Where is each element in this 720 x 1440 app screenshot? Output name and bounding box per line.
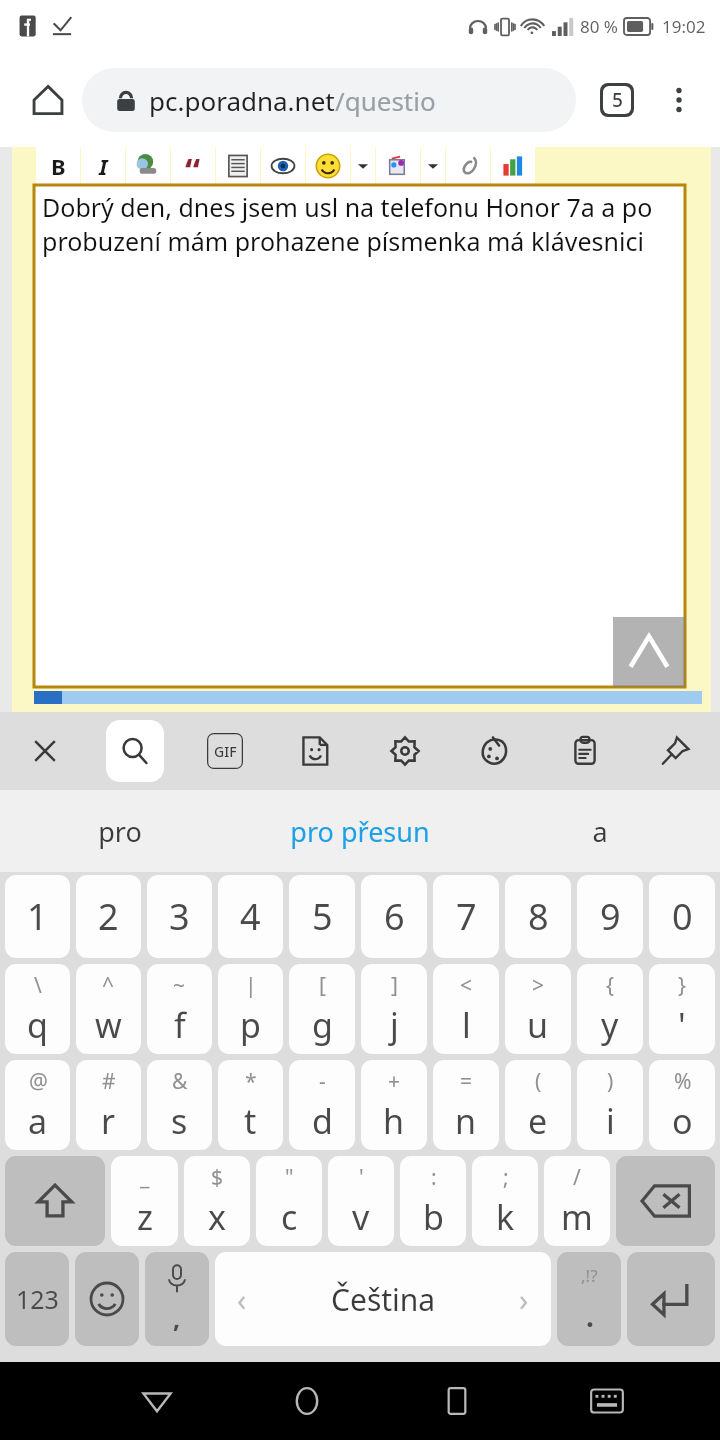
button[interactable]: I — [81, 147, 125, 185]
button[interactable]: ^ — [76, 964, 141, 1054]
staticText: n — [455, 1098, 477, 1144]
button[interactable]: # — [76, 1060, 141, 1150]
staticText: + — [388, 1067, 401, 1096]
staticText: b — [423, 1194, 444, 1240]
staticText: B — [51, 151, 66, 181]
button[interactable]: \ — [5, 964, 70, 1054]
button[interactable]: { — [577, 964, 643, 1054]
button[interactable]: > — [505, 964, 571, 1054]
staticText: i — [606, 1098, 615, 1144]
button[interactable]: Hide keyboard — [532, 1362, 682, 1440]
button[interactable]: pro přesun — [240, 790, 480, 872]
button[interactable]: 7 — [433, 875, 499, 958]
staticText: " — [285, 1163, 294, 1192]
button[interactable] — [351, 147, 375, 185]
button[interactable]: 8 — [505, 875, 571, 958]
button[interactable]: ' — [328, 1156, 394, 1246]
button[interactable]: Home — [14, 66, 82, 134]
button[interactable]: Emoji — [75, 1252, 139, 1346]
button[interactable]: } — [649, 964, 715, 1054]
staticText: ( — [535, 1067, 542, 1096]
button[interactable]: Close — [0, 712, 90, 790]
button[interactable]: Pin — [630, 712, 720, 790]
button[interactable]: & — [147, 1060, 212, 1150]
button[interactable]: " — [256, 1156, 322, 1246]
button[interactable]: 9 — [577, 875, 643, 958]
staticText: p — [240, 1002, 261, 1048]
button[interactable]: 4 — [218, 875, 283, 958]
staticText: 5 — [312, 892, 333, 941]
button[interactable]: - — [289, 1060, 355, 1150]
button[interactable]: Recents — [382, 1362, 532, 1440]
button[interactable]: 0 — [649, 875, 715, 958]
button[interactable]: $ — [184, 1156, 250, 1246]
button[interactable]: Shift — [5, 1156, 105, 1246]
button[interactable]: More options — [650, 71, 708, 129]
button[interactable]: = — [433, 1060, 499, 1150]
button[interactable]: 123 — [5, 1252, 69, 1346]
button[interactable]: < — [433, 964, 499, 1054]
staticText: % — [674, 1067, 692, 1096]
button[interactable]: % — [649, 1060, 715, 1150]
button[interactable]: 2 — [76, 875, 141, 958]
button[interactable] — [126, 147, 170, 185]
button[interactable] — [261, 147, 305, 185]
staticText: 19:02 — [662, 15, 706, 38]
button[interactable]: “ — [171, 147, 215, 185]
button[interactable]: ( — [505, 1060, 571, 1150]
button[interactable]: Clipboard — [540, 712, 630, 790]
button[interactable]: ‹ — [215, 1252, 551, 1346]
button[interactable]: ; — [472, 1156, 538, 1246]
staticText: _ — [140, 1163, 150, 1192]
button[interactable]: pro — [0, 790, 240, 872]
button[interactable]: * — [218, 1060, 283, 1150]
button[interactable]: Settings — [360, 712, 450, 790]
button[interactable] — [306, 147, 350, 185]
button[interactable]: ,!? — [557, 1252, 621, 1346]
staticText: h — [383, 1098, 405, 1144]
button[interactable]: Tabs — [586, 69, 648, 131]
staticText: * — [245, 1067, 257, 1096]
button[interactable] — [491, 147, 535, 185]
button[interactable]: Search — [90, 712, 180, 790]
button[interactable]: 1 — [5, 875, 70, 958]
staticText: GIF — [214, 742, 237, 761]
button[interactable]: 3 — [147, 875, 212, 958]
button[interactable]: 5 — [289, 875, 355, 958]
button[interactable]: + — [361, 1060, 427, 1150]
button[interactable]: ~ — [147, 964, 212, 1054]
staticText: 123 — [16, 1282, 59, 1316]
staticText: › — [519, 1279, 529, 1320]
button[interactable]: Backspace — [616, 1156, 715, 1246]
button[interactable]: Voice input — [145, 1252, 209, 1346]
button[interactable]: : — [400, 1156, 466, 1246]
button[interactable]: B — [36, 147, 80, 185]
staticText: ~ — [173, 971, 186, 1000]
button[interactable]: pc.poradna.net — [82, 68, 576, 132]
button[interactable]: GIF — [180, 712, 270, 790]
button[interactable]: ] — [361, 964, 427, 1054]
button[interactable]: Enter — [627, 1252, 715, 1346]
button[interactable]: Scroll up — [613, 617, 685, 687]
button[interactable]: @ — [5, 1060, 70, 1150]
button[interactable]: / — [544, 1156, 610, 1246]
button[interactable]: ) — [577, 1060, 643, 1150]
button[interactable] — [421, 147, 445, 185]
button[interactable]: a — [480, 790, 720, 872]
staticText: pro přesun — [290, 813, 430, 850]
button[interactable]: | — [218, 964, 283, 1054]
button[interactable]: [ — [289, 964, 355, 1054]
staticText: w — [95, 1002, 122, 1048]
staticText: ; — [503, 1163, 509, 1192]
button[interactable] — [216, 147, 260, 185]
button[interactable]: _ — [111, 1156, 178, 1246]
button[interactable]: Themes — [450, 712, 540, 790]
staticText: } — [678, 971, 686, 1000]
button[interactable]: Back — [82, 1362, 232, 1440]
button[interactable] — [446, 147, 490, 185]
staticText: : — [431, 1163, 437, 1192]
button[interactable]: Home — [232, 1362, 382, 1440]
button[interactable]: Stickers — [270, 712, 360, 790]
button[interactable]: 6 — [361, 875, 427, 958]
button[interactable] — [376, 147, 420, 185]
